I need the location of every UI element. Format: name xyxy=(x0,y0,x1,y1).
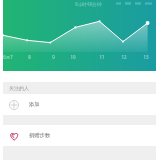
staticText: 10 xyxy=(70,54,76,60)
staticText: 关注的人 xyxy=(9,85,29,91)
staticText: 捐赠步数 xyxy=(29,132,51,139)
staticText: 12 xyxy=(121,54,127,60)
other: Add xyxy=(9,100,19,110)
staticText: 添加 xyxy=(29,101,40,108)
staticText: 9 xyxy=(52,54,55,60)
staticText: 11 xyxy=(99,54,105,60)
staticText: 9小时48分钟 xyxy=(75,1,102,7)
staticText: 8 xyxy=(28,54,31,60)
staticText: 13 xyxy=(143,54,149,60)
button[interactable]: Donate steps xyxy=(3,125,156,146)
other: Donate steps xyxy=(9,131,19,141)
button[interactable]: Add xyxy=(3,94,156,115)
staticText: 6月7 xyxy=(3,54,13,60)
